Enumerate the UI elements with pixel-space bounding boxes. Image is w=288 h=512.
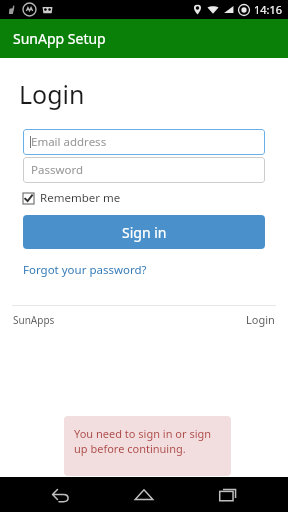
button[interactable]: Login xyxy=(246,312,275,327)
staticText: You need to sign in or sign up before co… xyxy=(74,426,223,456)
button[interactable]: Password xyxy=(23,157,265,183)
staticText: SunApps xyxy=(13,313,55,327)
staticText: Login xyxy=(19,77,85,111)
staticText: 14:16 xyxy=(254,2,283,17)
button[interactable]: Back xyxy=(36,477,84,512)
staticText: Email address xyxy=(31,134,107,150)
staticText: SunApp Setup xyxy=(13,29,106,48)
staticText: Sign in xyxy=(122,223,167,242)
staticText: Login xyxy=(246,312,275,327)
staticText: Forgot your password? xyxy=(23,262,147,278)
button[interactable]: Sign in xyxy=(23,215,265,249)
staticText: Password xyxy=(31,162,84,178)
button[interactable]: Email address xyxy=(23,129,265,155)
staticText: Remember me xyxy=(40,190,121,206)
button[interactable]: Forgot your password? xyxy=(23,262,147,278)
button[interactable]: Home xyxy=(120,477,168,512)
button[interactable]: Remember me xyxy=(23,190,121,206)
button[interactable]: Recent apps xyxy=(204,477,252,512)
